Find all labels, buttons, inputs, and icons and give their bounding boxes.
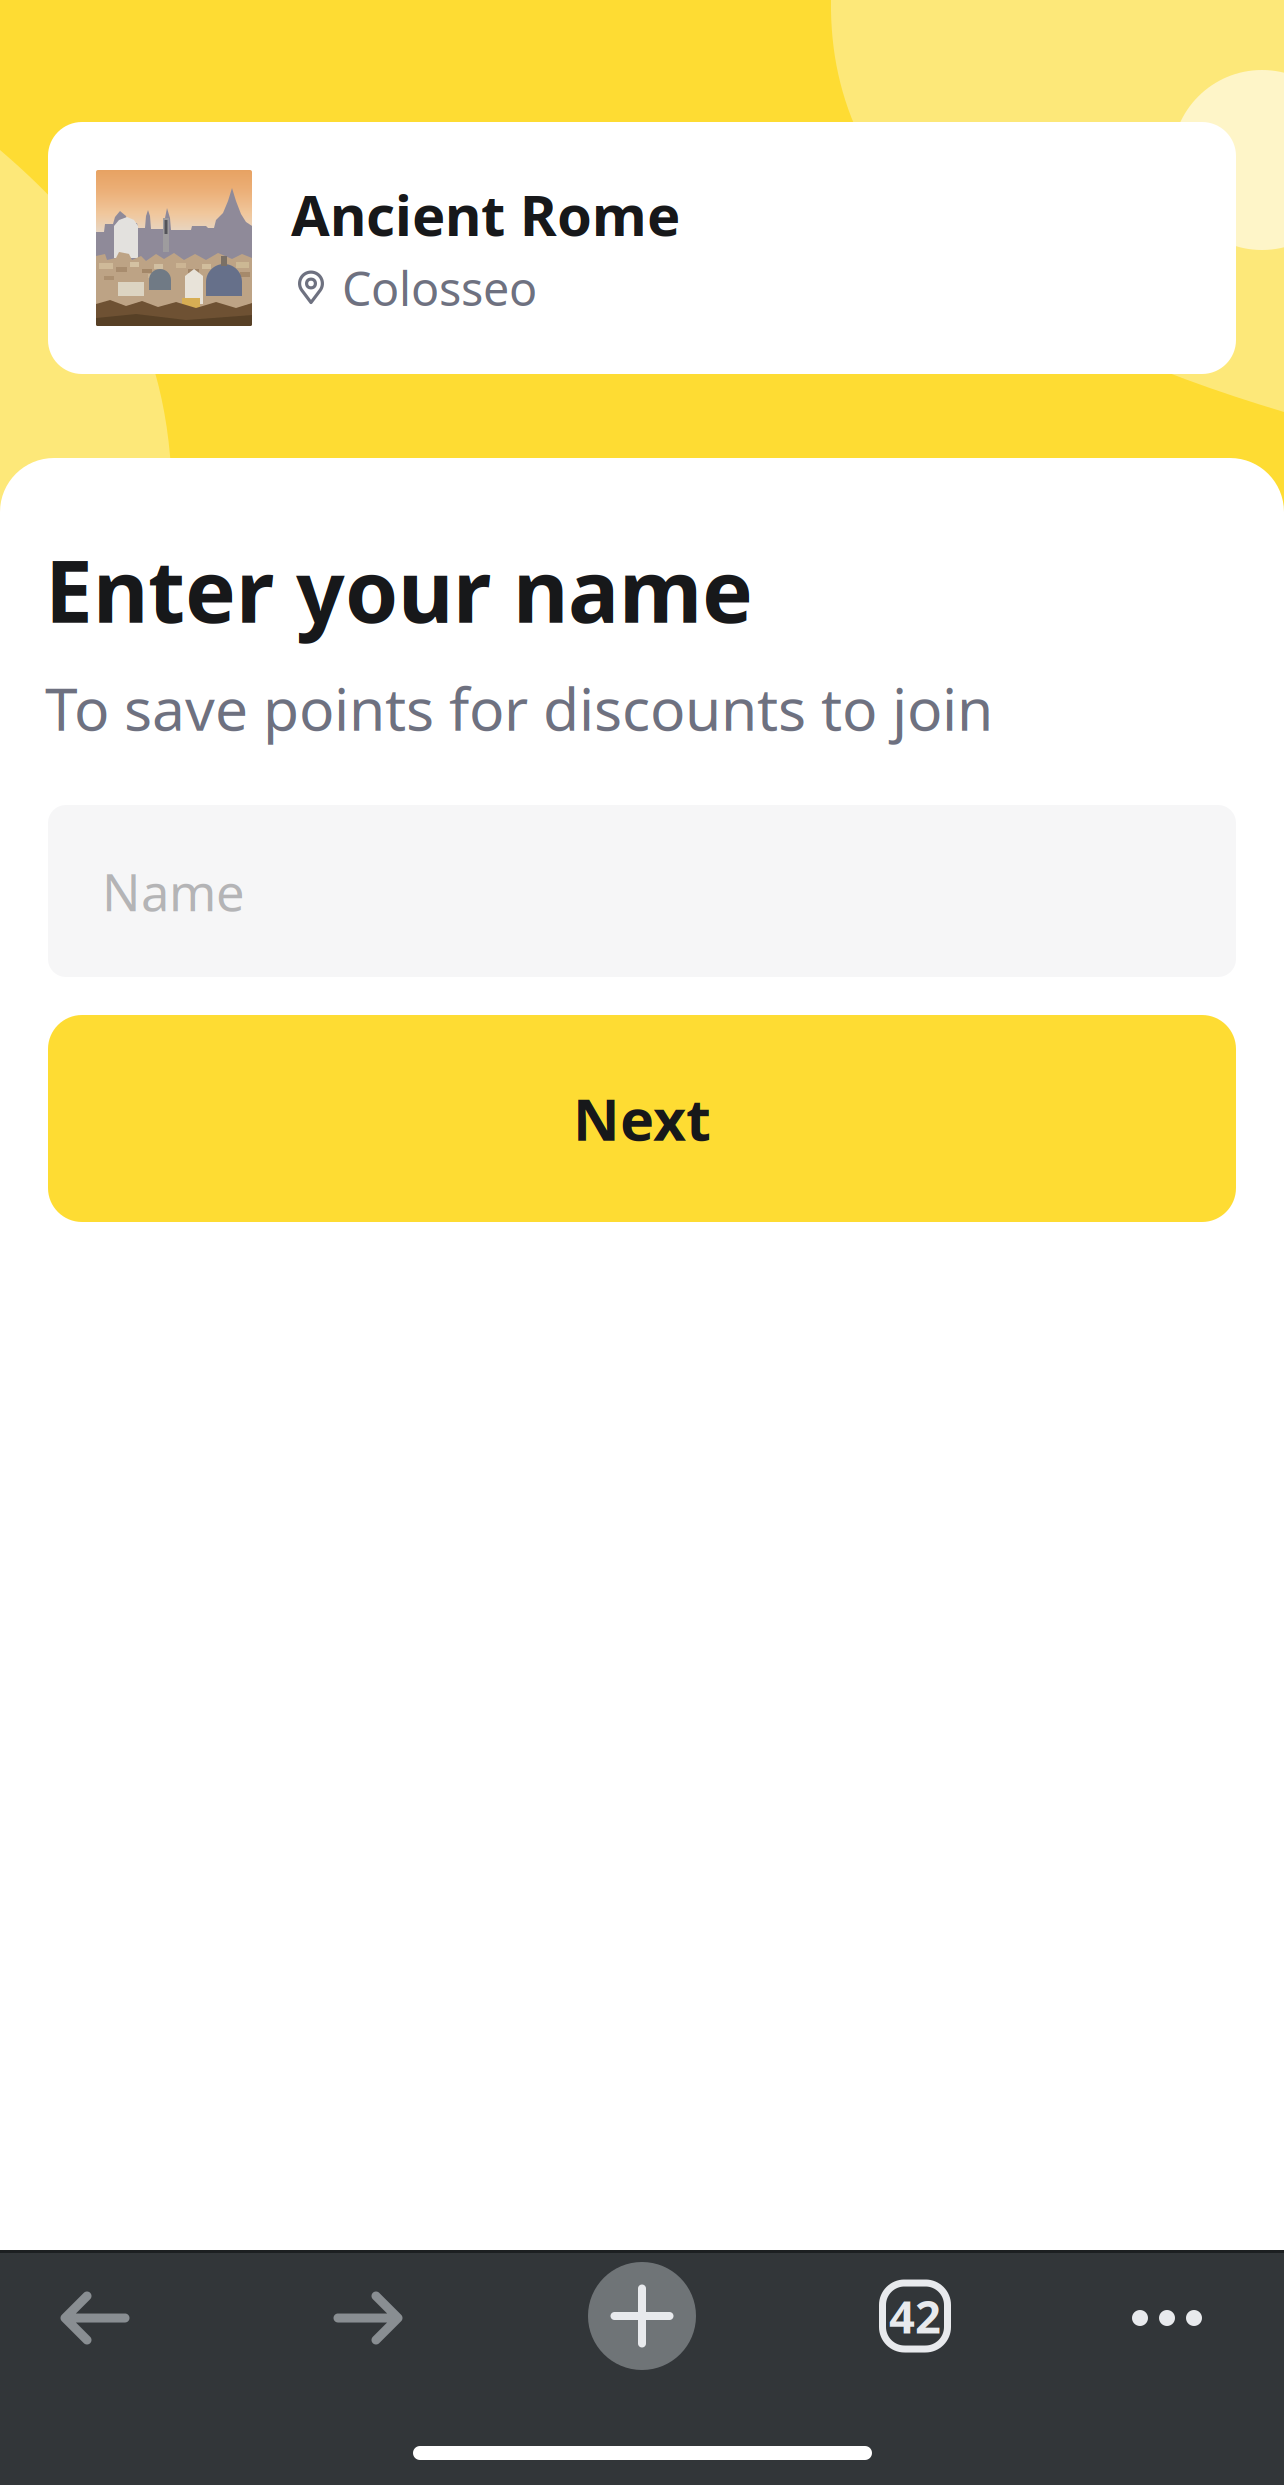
button[interactable]: Back (30, 2263, 160, 2373)
button[interactable]: Next (48, 1015, 1236, 1222)
staticText: Name (102, 858, 245, 925)
button[interactable]: Ancient Rome (48, 122, 1236, 374)
staticText: Enter your name (45, 533, 753, 646)
button[interactable]: Tabs (850, 2261, 980, 2371)
staticText: Next (573, 1080, 711, 1156)
staticText: Ancient Rome (291, 177, 680, 251)
button[interactable]: New Tab (577, 2261, 707, 2371)
staticText: 42 (889, 2286, 941, 2346)
staticText: To save points for discounts to join (45, 669, 993, 747)
button[interactable]: Name (48, 805, 1236, 977)
button[interactable]: More (1102, 2263, 1232, 2373)
button[interactable]: Forward (303, 2263, 433, 2373)
staticText: Colosseo (342, 257, 537, 319)
